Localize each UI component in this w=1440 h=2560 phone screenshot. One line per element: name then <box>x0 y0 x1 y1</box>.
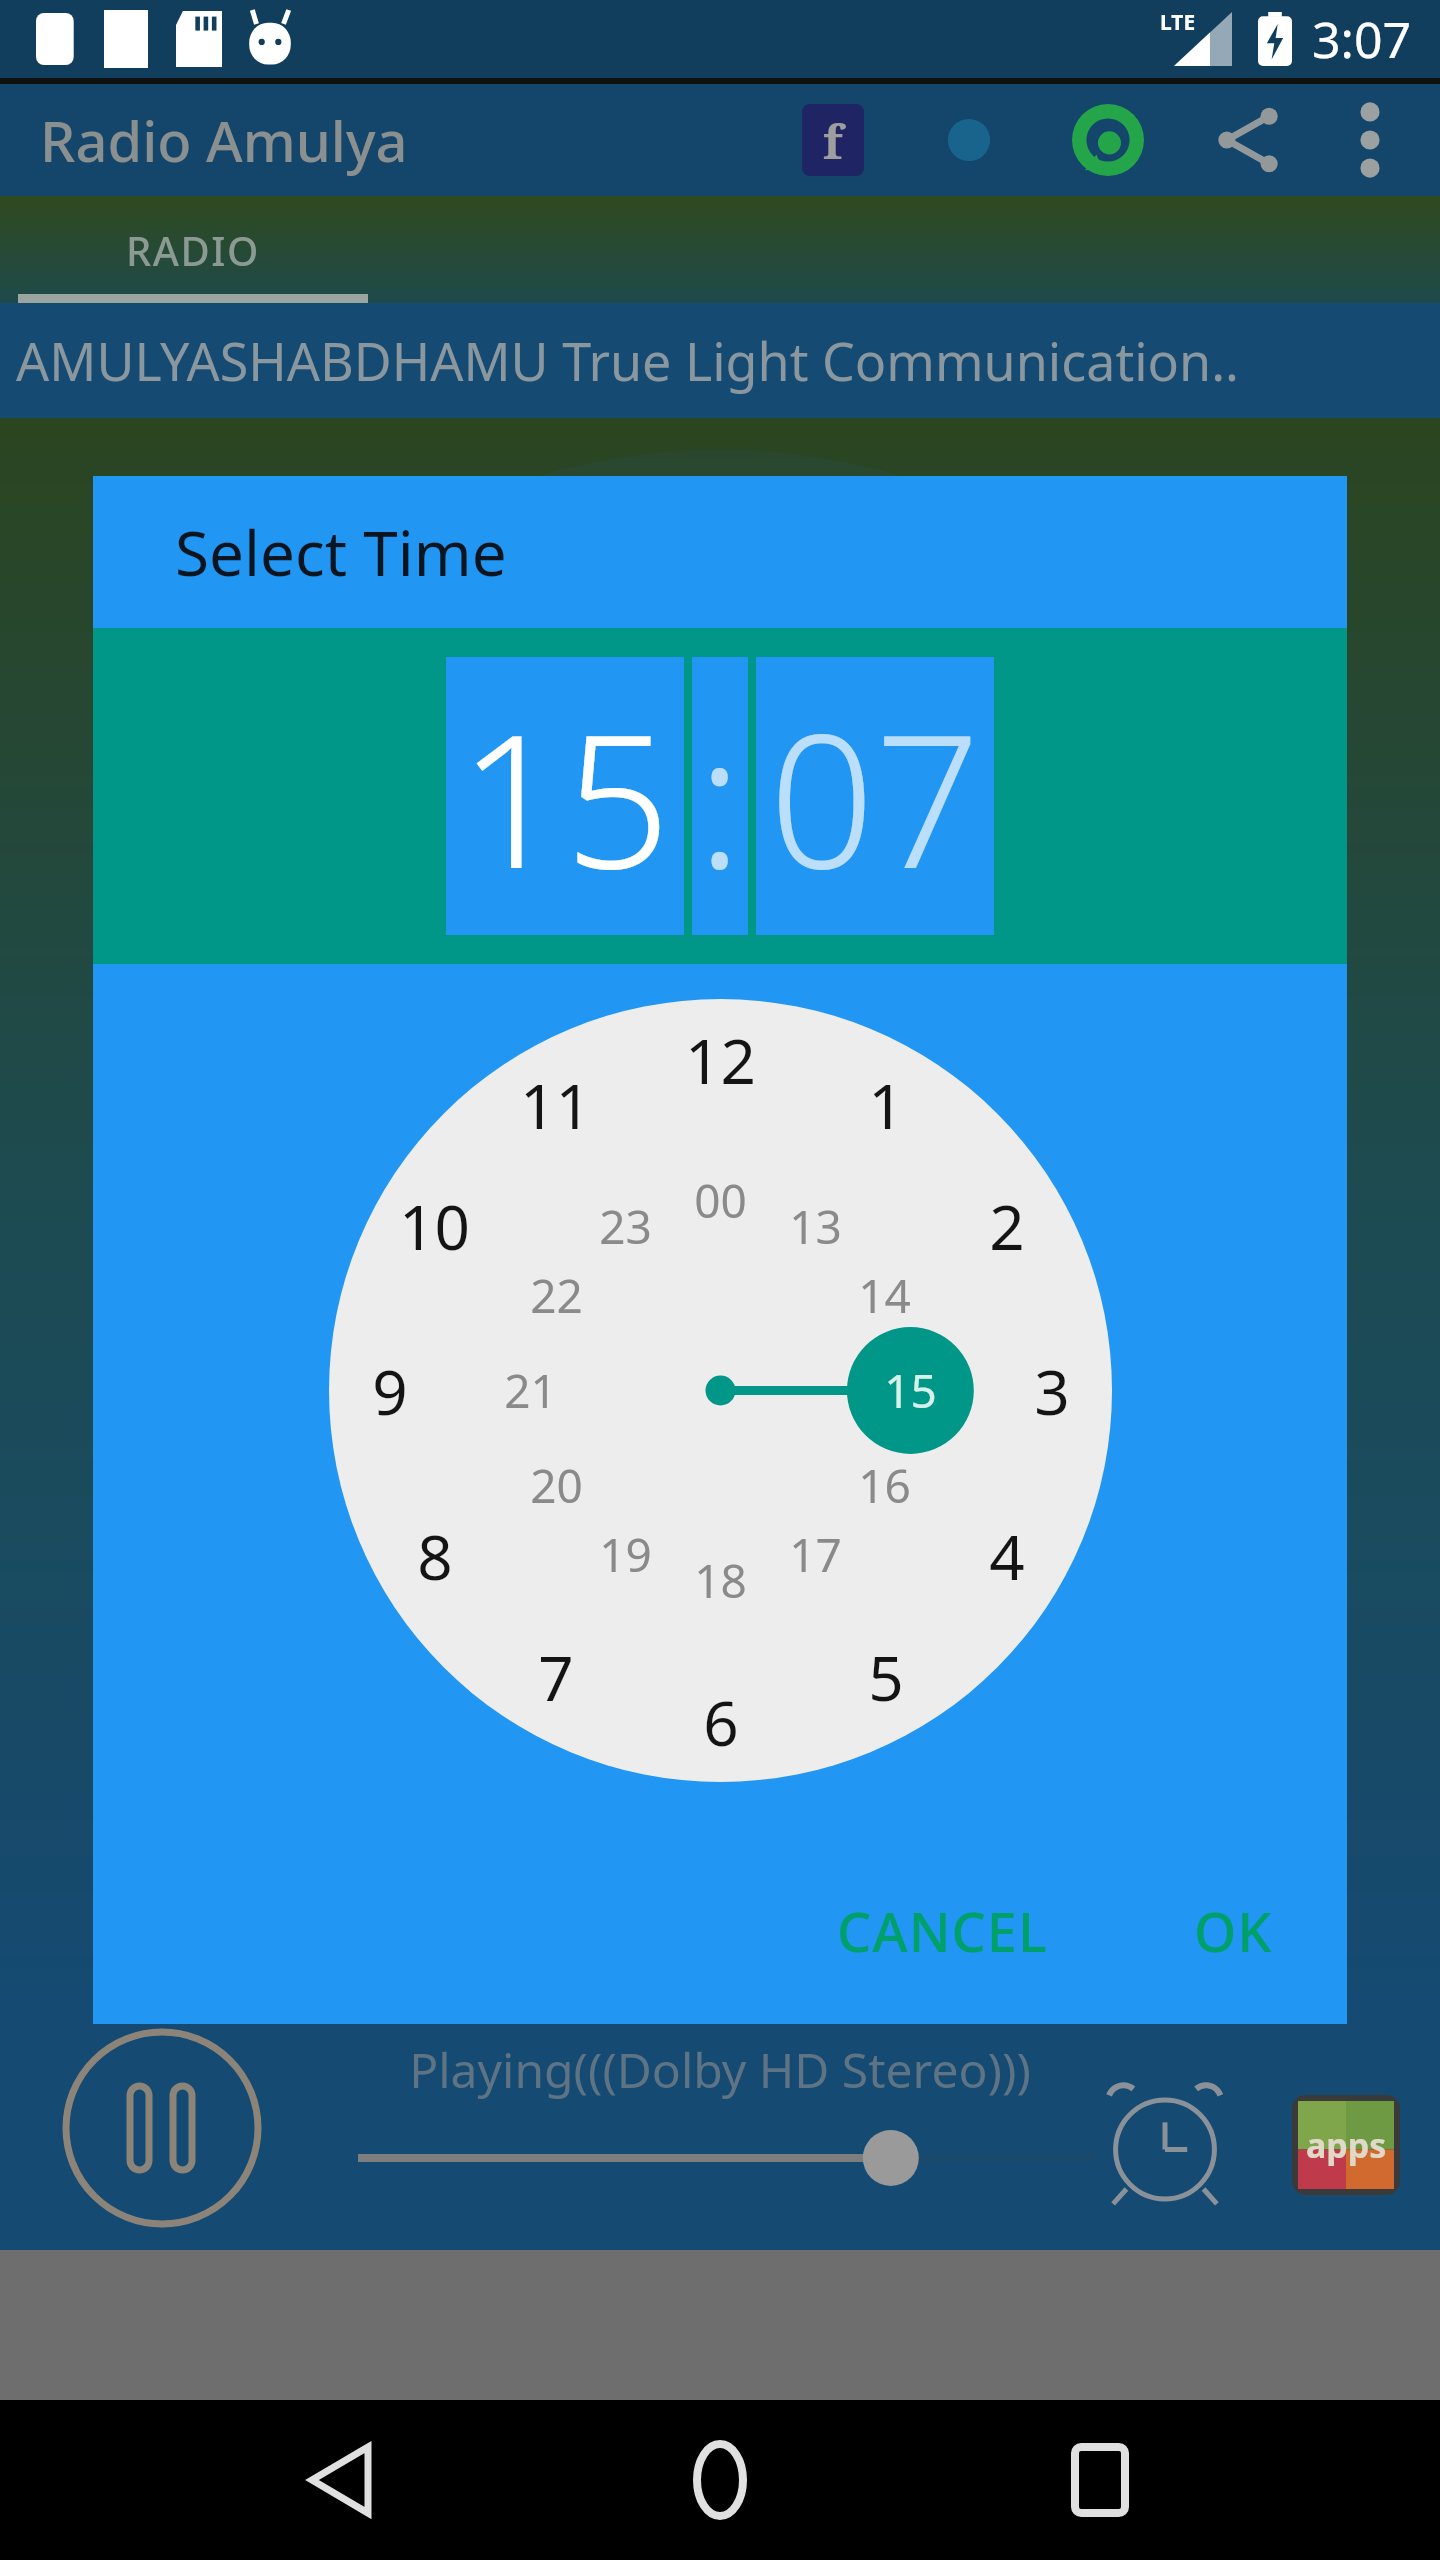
button[interactable]: Volume <box>358 2128 1098 2188</box>
staticText: 7 <box>538 1635 574 1719</box>
staticText: 4 <box>989 1514 1025 1598</box>
staticText: 16 <box>858 1454 911 1517</box>
staticText: 22 <box>530 1264 583 1327</box>
button[interactable]: 15 <box>446 657 684 935</box>
button[interactable]: 07 <box>756 657 994 935</box>
staticText: 11 <box>520 1063 591 1147</box>
button[interactable]: Twitter <box>930 101 1008 179</box>
staticText: 10 <box>399 1184 470 1268</box>
staticText: 6 <box>703 1680 739 1764</box>
staticText: 13 <box>789 1195 842 1258</box>
staticText: 00 <box>694 1169 747 1232</box>
staticText: 14 <box>858 1264 911 1327</box>
staticText: 1 <box>868 1063 904 1147</box>
button[interactable]: CANCEL <box>803 1868 1082 1994</box>
staticText: 19 <box>599 1523 652 1586</box>
staticText: 12 <box>685 1018 756 1102</box>
button[interactable]: Recent apps <box>1030 2410 1170 2550</box>
staticText: Radio Amulya <box>40 102 408 178</box>
staticText: 17 <box>789 1523 842 1586</box>
staticText: RADIO <box>126 223 260 277</box>
staticText: 15 <box>884 1359 937 1422</box>
staticText: 9 <box>372 1349 408 1433</box>
button[interactable]: WhatsApp <box>1064 96 1152 184</box>
staticText: 5 <box>868 1635 904 1719</box>
button[interactable]: Sleep timer <box>1100 2078 1230 2208</box>
staticText: Playing(((Dolby HD Stereo))) <box>409 2037 1031 2102</box>
staticText: CANCEL <box>837 1894 1048 1968</box>
button[interactable]: Clock dial <box>329 999 1112 1782</box>
staticText: LTE <box>1160 8 1196 37</box>
staticText: OK <box>1194 1894 1273 1968</box>
staticText: f <box>823 108 843 173</box>
staticText: : <box>697 670 743 922</box>
staticText: 3:07 <box>1312 5 1412 73</box>
staticText: 8 <box>417 1514 453 1598</box>
button[interactable]: Apps <box>1292 2095 1400 2195</box>
button[interactable]: Home <box>650 2410 790 2550</box>
staticText: 18 <box>694 1549 747 1612</box>
staticText: 07 <box>769 670 981 922</box>
staticText: AMULYASHABDHAMU True Light Communication… <box>16 325 1240 396</box>
staticText: 20 <box>530 1454 583 1517</box>
button[interactable]: RADIO <box>18 196 368 303</box>
staticText: apps <box>1306 2122 1387 2168</box>
staticText: 15 <box>459 670 671 922</box>
button[interactable]: Share <box>1204 96 1292 184</box>
button[interactable]: Back <box>270 2410 410 2550</box>
button[interactable]: OK <box>1160 1868 1307 1994</box>
staticText: 3 <box>1034 1349 1070 1433</box>
button[interactable]: More options <box>1326 96 1414 184</box>
button[interactable]: Pause <box>62 2028 262 2228</box>
staticText: 23 <box>599 1195 652 1258</box>
button[interactable]: Facebook <box>794 101 872 179</box>
staticText: 21 <box>504 1359 557 1422</box>
staticText: 2 <box>989 1184 1025 1268</box>
staticText: Select Time <box>175 510 507 594</box>
